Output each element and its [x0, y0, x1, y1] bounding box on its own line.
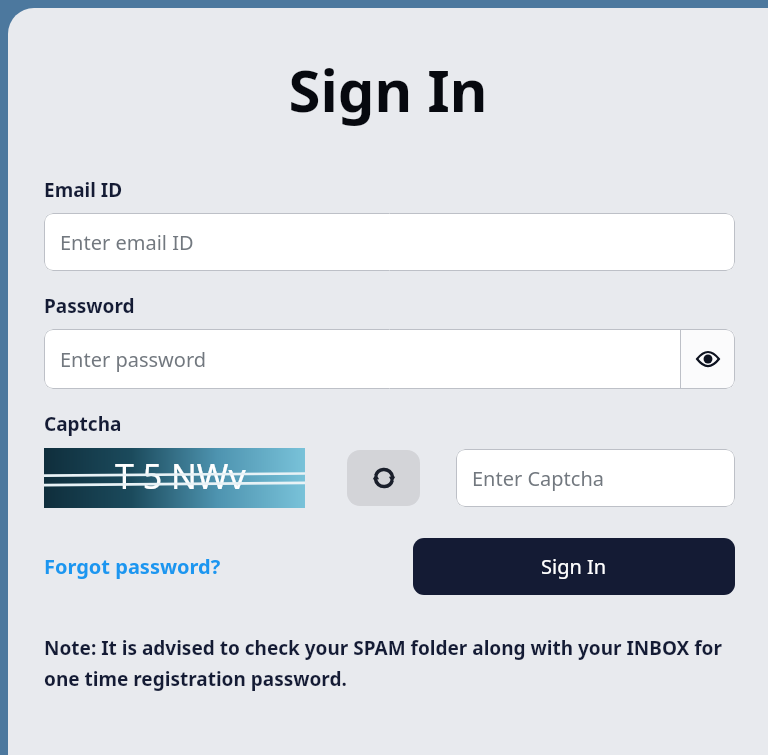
button[interactable]: Sign In	[413, 538, 735, 595]
staticText: Enter email ID	[60, 229, 194, 256]
staticText: Enter password	[60, 346, 207, 373]
other: Captcha image	[44, 448, 305, 508]
button[interactable]: Enter email ID	[44, 213, 735, 271]
button[interactable]: Forgot password?	[44, 547, 221, 586]
button[interactable]: Enter password	[44, 329, 680, 389]
staticText: Sign In	[8, 50, 768, 129]
button[interactable]: Enter Captcha	[456, 449, 735, 507]
staticText: Captcha	[44, 411, 122, 437]
staticText: T 5 NWv	[115, 453, 246, 499]
staticText: Forgot password?	[44, 553, 221, 580]
button[interactable]: Show password	[681, 329, 735, 389]
staticText: Sign In	[541, 553, 607, 580]
button[interactable]: Refresh captcha	[347, 450, 420, 506]
staticText: Email ID	[44, 177, 123, 203]
staticText: Enter Captcha	[472, 465, 604, 492]
staticText: Note: It is advised to check your SPAM f…	[44, 635, 735, 691]
staticText: Password	[44, 293, 135, 319]
